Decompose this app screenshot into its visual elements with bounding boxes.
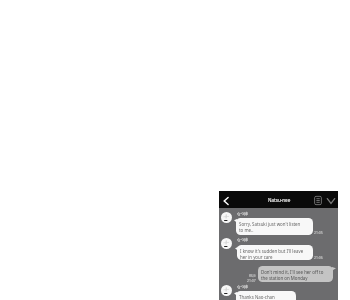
staticText: なつ姉 bbox=[237, 285, 248, 290]
button[interactable]: Thanks Nao-chan bbox=[236, 291, 296, 300]
button[interactable]: Profile picture bbox=[221, 212, 232, 223]
button[interactable]: Albums bbox=[312, 195, 323, 206]
staticText: Natsu-nee bbox=[268, 197, 291, 203]
staticText: 21:05 bbox=[314, 230, 323, 235]
button[interactable]: Back bbox=[220, 195, 231, 206]
staticText: I know it's sudden but I'll leave her in… bbox=[240, 248, 306, 260]
staticText: なつ姉 bbox=[237, 212, 248, 217]
button[interactable]: Profile picture bbox=[221, 238, 232, 249]
staticText: Thanks Nao-chan bbox=[239, 294, 291, 300]
staticText: なつ姉 bbox=[237, 238, 248, 243]
button[interactable]: Profile picture bbox=[221, 285, 232, 296]
staticText: Sorry, Satsuki just won't listen to me.. bbox=[239, 221, 304, 233]
button[interactable]: More options bbox=[325, 195, 336, 206]
button[interactable]: Don't mind it, I'll see her off to the s… bbox=[258, 266, 333, 282]
staticText: Don't mind it, I'll see her off to the s… bbox=[261, 269, 327, 281]
staticText: 既読 bbox=[249, 274, 256, 278]
button[interactable]: Sorry, Satsuki just won't listen to me.. bbox=[236, 218, 313, 235]
staticText: 21:07 bbox=[247, 278, 256, 283]
button[interactable]: I know it's sudden but I'll leave her in… bbox=[237, 245, 313, 260]
staticText: 21:06 bbox=[314, 255, 323, 260]
